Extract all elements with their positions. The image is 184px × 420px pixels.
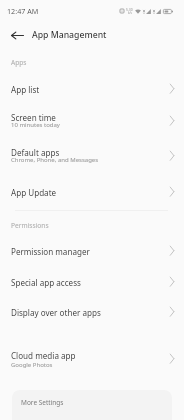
- button[interactable]: Cloud media app: [0, 341, 184, 377]
- button[interactable]: More Settings: [12, 390, 172, 420]
- staticText: Apps: [11, 58, 27, 67]
- staticText: Permission manager: [11, 246, 90, 257]
- button[interactable]: Special app access: [0, 267, 184, 297]
- staticText: App list: [11, 84, 40, 95]
- staticText: k/s: [128, 11, 132, 15]
- staticText: Display over other apps: [11, 307, 101, 318]
- staticText: Special app access: [11, 277, 81, 288]
- button[interactable]: Screen time: [0, 104, 184, 139]
- staticText: App Update: [11, 187, 57, 198]
- button[interactable]: Display over other apps: [0, 297, 184, 327]
- staticText: 5.30: [126, 7, 133, 11]
- button[interactable]: App list: [0, 74, 184, 104]
- staticText: Screen time: [11, 112, 56, 123]
- staticText: Cloud media app: [11, 350, 76, 361]
- button[interactable]: Permission manager: [0, 236, 184, 267]
- staticText: Permissions: [11, 221, 49, 230]
- button[interactable]: Back: [5, 23, 29, 47]
- staticText: Default apps: [11, 147, 60, 158]
- staticText: More Settings: [21, 398, 64, 407]
- staticText: App Management: [32, 29, 107, 41]
- button[interactable]: App Update: [0, 174, 184, 210]
- staticText: 12:47 AM: [7, 6, 39, 16]
- staticText: Google Photos: [11, 361, 53, 369]
- staticText: Chrome, Phone, and Messages: [11, 156, 99, 164]
- staticText: 10 minutes today: [11, 121, 60, 129]
- button[interactable]: Default apps: [0, 139, 184, 174]
